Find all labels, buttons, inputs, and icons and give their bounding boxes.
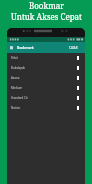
button[interactable]: CLEAR [69, 46, 85, 50]
staticText: Bookmark [17, 45, 34, 50]
button[interactable]: Bukalapak [7, 63, 85, 73]
staticText: Fitbit [11, 56, 18, 60]
button[interactable]: Medium [7, 83, 85, 93]
staticText: Bukalapak [11, 66, 26, 70]
staticText: Untuk Akses Cepat [11, 11, 82, 22]
staticText: Bookmar [29, 0, 64, 11]
staticText: Notion [11, 106, 21, 110]
button[interactable]: Standard Ch [7, 93, 85, 103]
button[interactable]: Asana [7, 73, 85, 83]
staticText: Standard Ch [11, 96, 28, 100]
button[interactable]: Menu [10, 46, 13, 49]
button[interactable]: Notion [7, 103, 85, 113]
staticText: Asana [11, 76, 20, 80]
staticText: Medium [11, 86, 23, 90]
button[interactable]: Fitbit [7, 53, 85, 63]
staticText: CLEAR [69, 46, 78, 50]
